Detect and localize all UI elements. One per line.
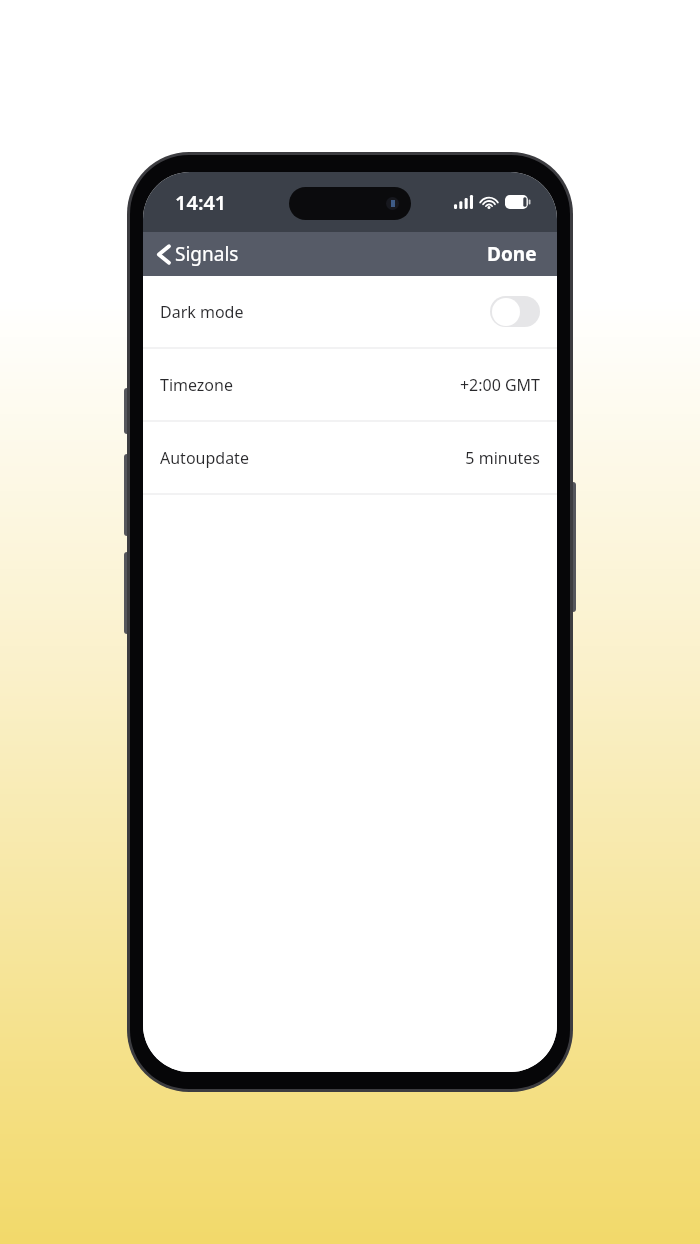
button[interactable]: Autoupdate — [143, 422, 557, 493]
button[interactable]: Timezone — [143, 349, 557, 420]
staticText: Autoupdate — [160, 447, 465, 469]
button[interactable]: Signals — [143, 237, 249, 271]
staticText: 14:41 — [175, 189, 227, 216]
staticText: Dark mode — [160, 301, 490, 323]
staticText: Timezone — [160, 374, 459, 396]
staticText: +2:00 GMT — [459, 374, 540, 396]
staticText: 5 minutes — [465, 447, 540, 469]
button[interactable]: Dark mode toggle — [490, 296, 540, 327]
staticText: Done — [487, 241, 537, 267]
button[interactable]: Dark mode — [143, 276, 557, 347]
staticText: Signals — [175, 241, 239, 267]
button[interactable]: Done — [473, 235, 557, 273]
